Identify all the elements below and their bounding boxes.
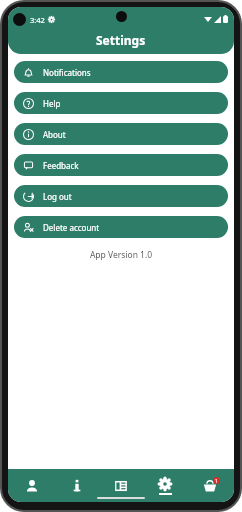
button[interactable]: Settings xyxy=(145,469,185,502)
button[interactable]: Cart xyxy=(190,469,230,502)
staticText: 1 xyxy=(215,478,218,484)
button[interactable]: Delete account xyxy=(14,216,228,238)
button[interactable]: Help xyxy=(14,92,228,114)
staticText: Notifications xyxy=(43,67,91,78)
staticText: Feedback xyxy=(43,160,79,171)
button[interactable]: Log out xyxy=(14,185,228,207)
button[interactable]: Feedback xyxy=(14,154,228,176)
button[interactable]: Information xyxy=(57,469,97,502)
staticText: App Version 1.0 xyxy=(8,249,234,261)
button[interactable]: About xyxy=(14,123,228,145)
staticText: Log out xyxy=(43,191,72,202)
staticText: Delete account xyxy=(43,222,100,233)
staticText: Help xyxy=(43,98,61,109)
button[interactable]: Notifications xyxy=(14,61,228,83)
staticText: 3:42 xyxy=(30,15,45,25)
button[interactable]: Profile xyxy=(12,469,52,502)
button[interactable]: Catalog xyxy=(101,469,141,502)
staticText: Settings xyxy=(96,32,146,48)
staticText: About xyxy=(43,129,66,140)
